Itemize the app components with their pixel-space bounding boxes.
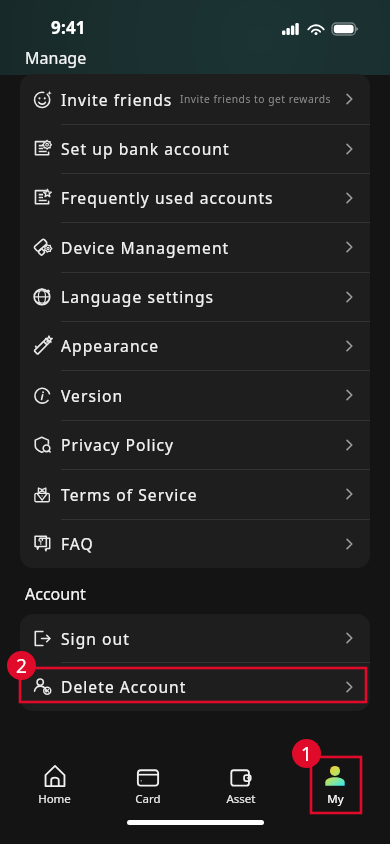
- button[interactable]: Asset: [194, 750, 288, 812]
- staticText: 9:41: [51, 16, 86, 39]
- button[interactable]: Invite friends: [20, 74, 370, 124]
- button[interactable]: Frequently used accounts: [20, 173, 370, 222]
- button[interactable]: Set up bank account: [20, 124, 370, 173]
- button[interactable]: Sign out: [20, 614, 370, 662]
- staticText: Version: [61, 385, 124, 406]
- staticText: Frequently used accounts: [61, 187, 274, 208]
- staticText: Sign out: [61, 628, 130, 649]
- button[interactable]: My: [288, 750, 382, 812]
- staticText: Invite friends: [61, 89, 173, 110]
- button[interactable]: Language settings: [20, 272, 370, 321]
- button[interactable]: Appearance: [20, 321, 370, 370]
- staticText: Terms of Service: [61, 484, 198, 505]
- staticText: Asset: [226, 791, 256, 807]
- button[interactable]: Card: [101, 750, 194, 812]
- staticText: Appearance: [61, 335, 159, 356]
- button[interactable]: Home: [8, 750, 101, 812]
- button[interactable]: Device Management: [20, 222, 370, 272]
- staticText: Card: [135, 791, 161, 807]
- staticText: 1: [301, 741, 312, 767]
- button[interactable]: Terms of Service: [20, 469, 370, 519]
- button[interactable]: Delete Account: [20, 662, 370, 711]
- staticText: Set up bank account: [61, 138, 230, 159]
- staticText: 2: [16, 653, 27, 679]
- staticText: Language settings: [61, 286, 215, 307]
- staticText: Invite friends to get rewards: [180, 92, 331, 106]
- staticText: FAQ: [61, 533, 94, 554]
- staticText: Device Management: [61, 237, 230, 258]
- staticText: Home: [38, 791, 71, 807]
- button[interactable]: Privacy Policy: [20, 420, 370, 469]
- button[interactable]: Version: [20, 370, 370, 420]
- staticText: Delete Account: [61, 676, 187, 697]
- staticText: My: [327, 791, 344, 807]
- staticText: Manage: [25, 47, 87, 69]
- staticText: Privacy Policy: [61, 434, 175, 455]
- button[interactable]: FAQ: [20, 519, 370, 568]
- staticText: Account: [25, 583, 86, 605]
